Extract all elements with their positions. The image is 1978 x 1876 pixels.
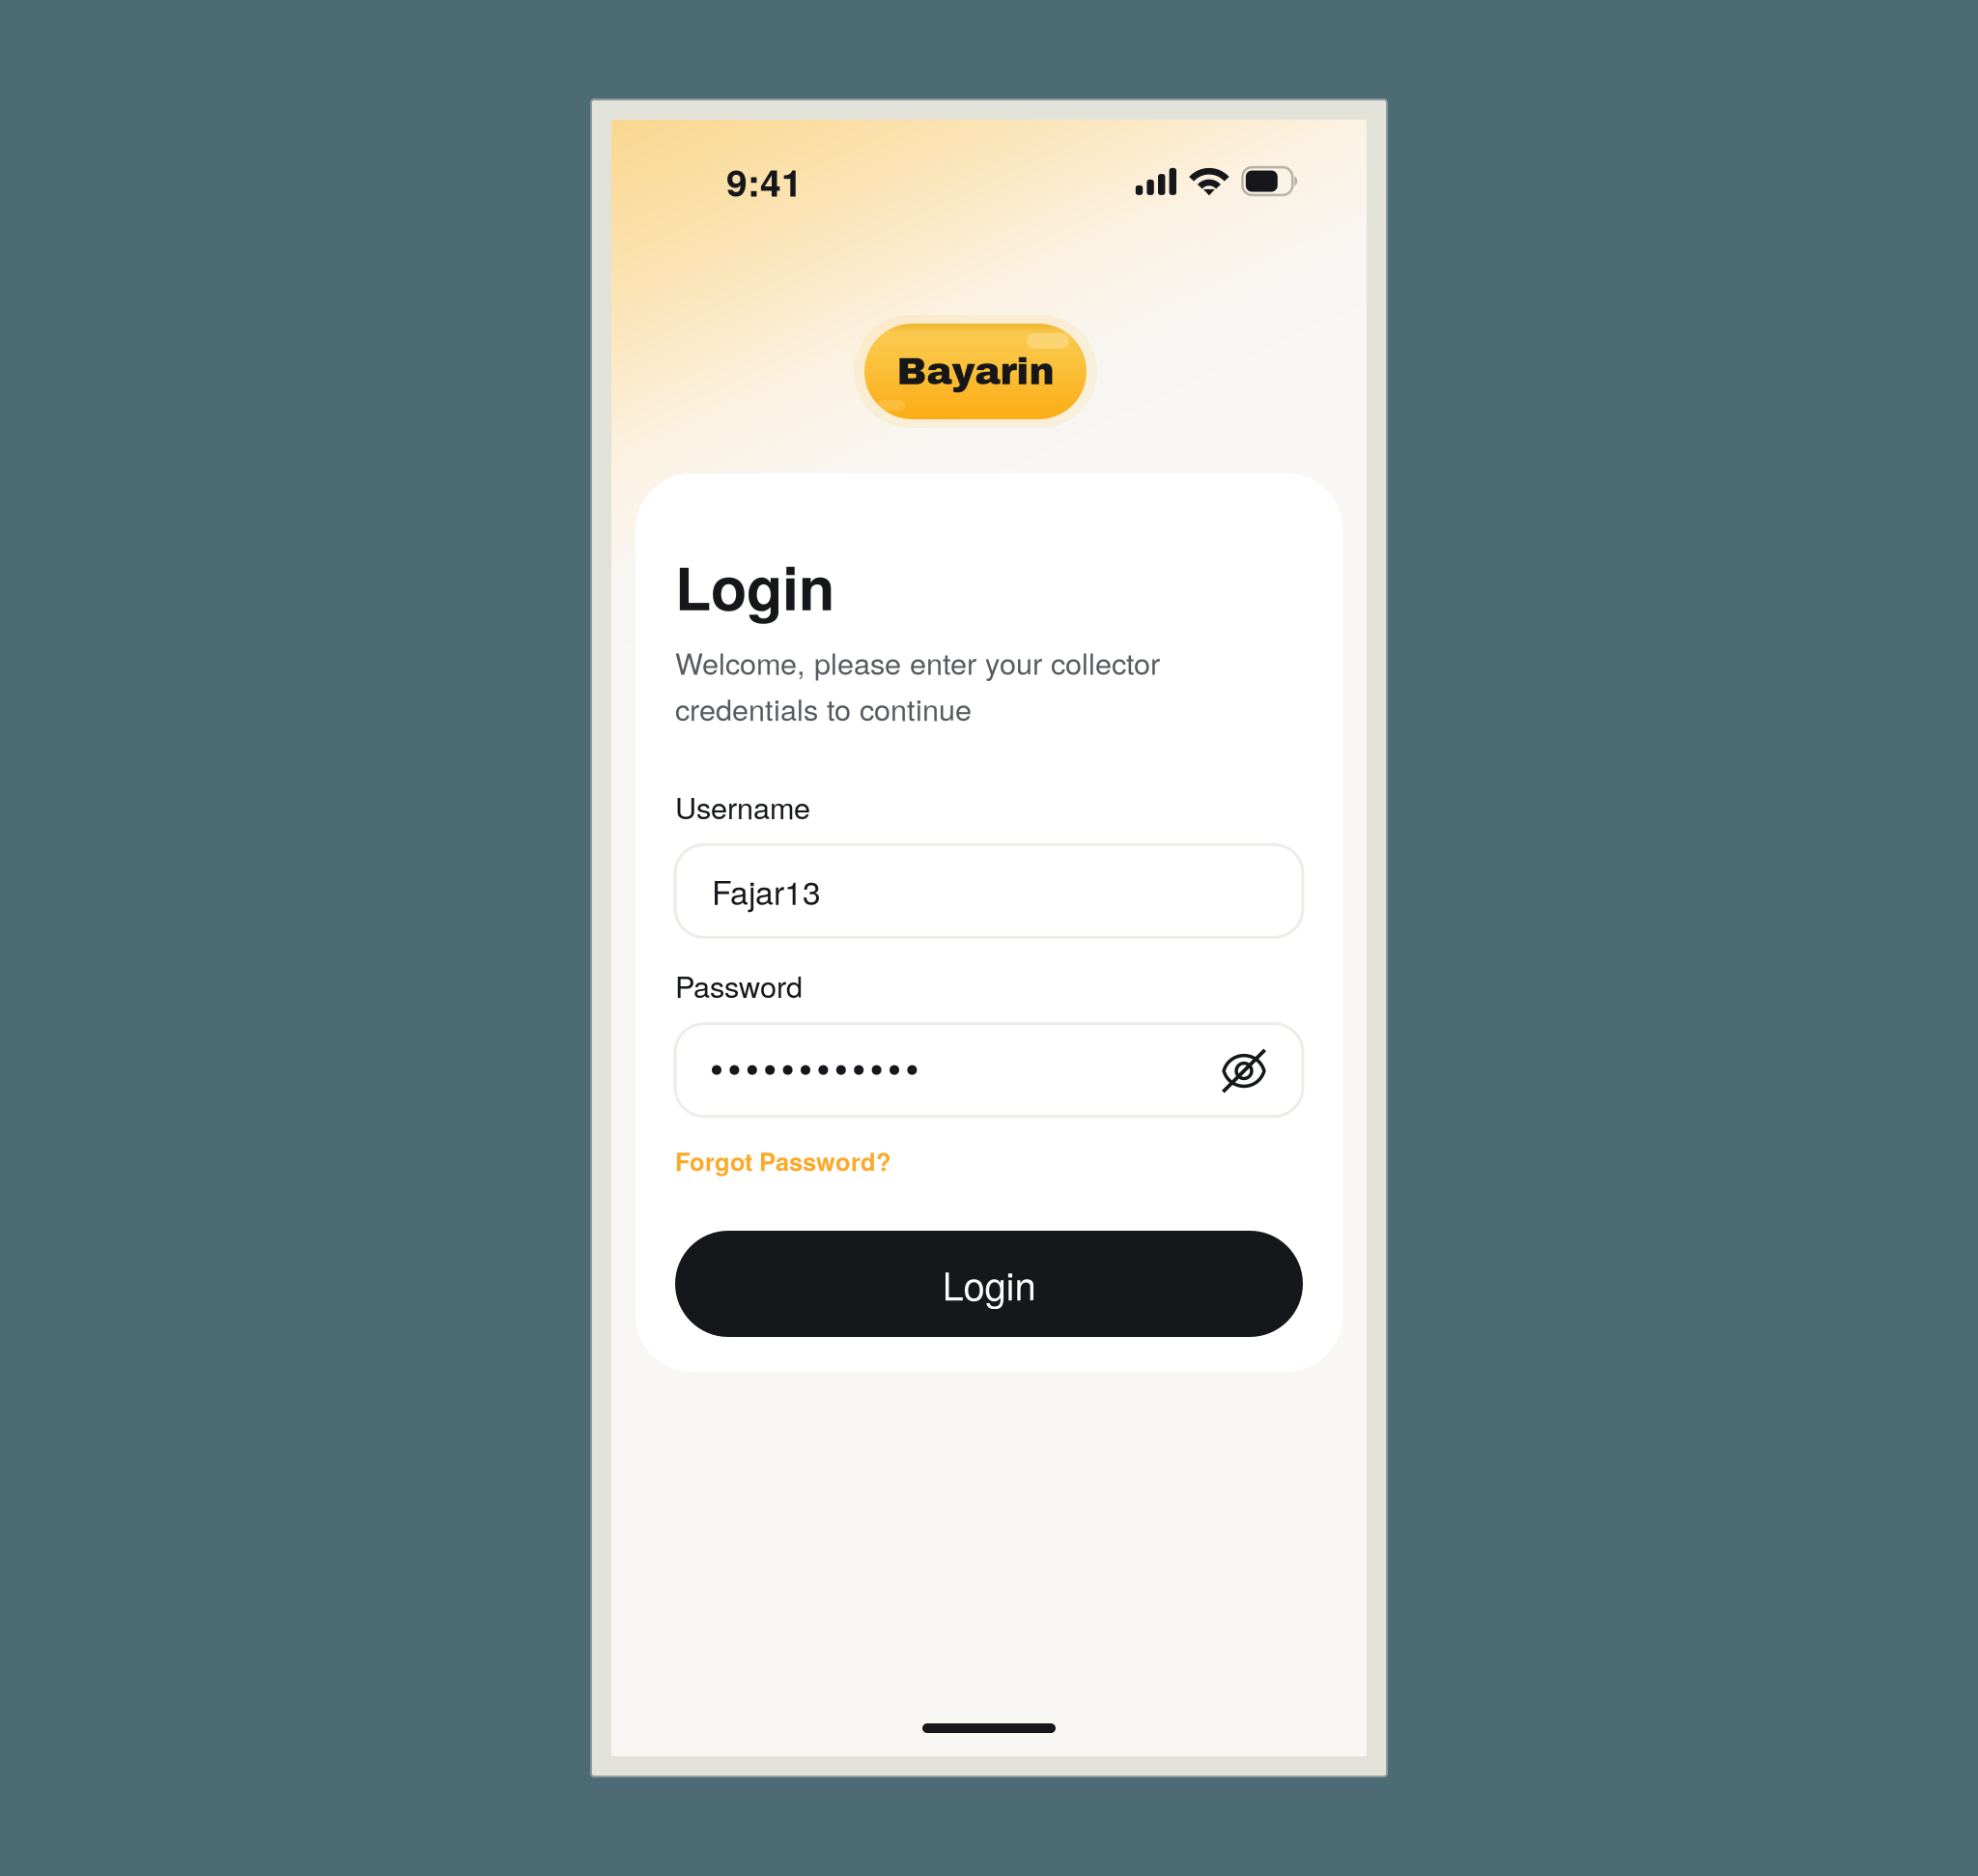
staticText: Bayarin: [897, 351, 1054, 392]
staticText: Login: [675, 544, 834, 628]
button[interactable]: Forgot Password?: [675, 1143, 891, 1179]
staticText: 9:41: [726, 154, 803, 208]
staticText: Forgot Password?: [675, 1143, 891, 1179]
button[interactable]: Show password: [1222, 1048, 1266, 1092]
staticText: Username: [675, 785, 810, 828]
staticText: Welcome, please enter your collector cre…: [675, 641, 1160, 729]
staticText: Fajar13: [712, 868, 821, 914]
staticText: Login: [942, 1256, 1036, 1312]
staticText: Password: [675, 964, 803, 1006]
button[interactable]: Login: [675, 1231, 1303, 1337]
